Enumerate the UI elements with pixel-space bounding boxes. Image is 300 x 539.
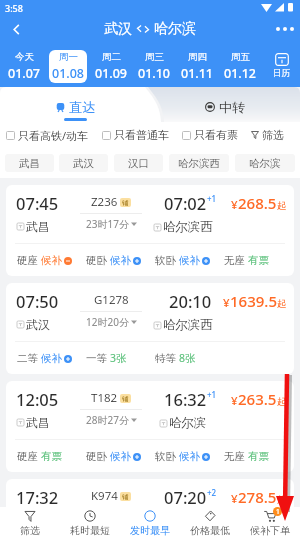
- button[interactable]: 返回: [0, 14, 32, 44]
- staticText: 硬座: [17, 254, 38, 267]
- staticText: 二等: [17, 352, 38, 365]
- staticText: 只看有票: [194, 128, 238, 142]
- staticText: 武昌: [19, 157, 40, 170]
- staticText: 硬卧: [86, 254, 107, 267]
- staticText: 无座: [224, 254, 245, 267]
- button[interactable]: 武汉: [59, 154, 108, 172]
- button[interactable]: 周三: [136, 50, 173, 83]
- staticText: 发时最早: [130, 524, 170, 537]
- staticText: K974: [91, 488, 118, 504]
- staticText: 周三: [145, 51, 164, 63]
- button[interactable]: 周一: [49, 50, 87, 83]
- staticText: 周五: [231, 51, 250, 63]
- button[interactable]: 耗时最短: [60, 507, 120, 539]
- staticText: 01.12: [224, 65, 257, 82]
- button[interactable]: 中转: [150, 87, 300, 122]
- staticText: ¥: [231, 197, 238, 213]
- button[interactable]: 周二: [93, 50, 130, 83]
- button[interactable]: 筛选: [251, 128, 284, 142]
- staticText: Z236: [91, 194, 118, 210]
- staticText: 硬卧: [86, 450, 107, 463]
- staticText: 武汉: [104, 20, 132, 38]
- button[interactable]: 只看高铁/动车: [6, 128, 89, 143]
- staticText: 铺: [122, 199, 129, 207]
- button[interactable]: 直达: [0, 87, 150, 122]
- staticText: 候补: [179, 450, 200, 463]
- staticText: 37时48分: [86, 511, 129, 514]
- staticText: 周二: [102, 51, 121, 63]
- button[interactable]: 只看普通车: [102, 128, 169, 142]
- staticText: 哈尔滨西: [178, 157, 220, 170]
- staticText: 武昌: [26, 513, 50, 514]
- staticText: 特等: [155, 352, 176, 365]
- staticText: 278.5: [238, 487, 277, 507]
- button[interactable]: 1: [240, 507, 300, 539]
- staticText: 哈尔滨西: [163, 219, 213, 235]
- button[interactable]: 07:45: [6, 185, 294, 276]
- staticText: 武汉: [26, 317, 50, 332]
- staticText: 周四: [188, 51, 207, 63]
- staticText: 无座: [224, 450, 245, 463]
- staticText: 1639.5: [230, 291, 277, 311]
- staticText: 3张: [110, 351, 127, 365]
- staticText: 一等: [86, 352, 107, 365]
- staticText: 3:58: [5, 2, 23, 14]
- staticText: 有票: [248, 450, 269, 463]
- staticText: 候补: [110, 450, 131, 463]
- button[interactable]: 武昌: [5, 154, 54, 172]
- staticText: G1278: [94, 292, 129, 308]
- staticText: 武昌: [26, 219, 50, 234]
- button[interactable]: 哈尔滨: [235, 154, 295, 172]
- button[interactable]: 价格最低: [180, 507, 240, 539]
- staticText: 筛选: [20, 524, 40, 537]
- button[interactable]: 日历: [262, 45, 300, 87]
- staticText: ¥: [231, 393, 238, 409]
- staticText: 硬座: [17, 450, 38, 463]
- staticText: 01.10: [138, 65, 171, 82]
- button[interactable]: 汉口: [114, 154, 163, 172]
- staticText: 候补: [41, 254, 62, 267]
- staticText: 直达: [69, 99, 95, 115]
- button[interactable]: 17:32: [6, 479, 294, 514]
- staticText: 软卧: [155, 254, 176, 267]
- staticText: 候补: [41, 352, 62, 365]
- staticText: 263.5: [238, 389, 277, 409]
- staticText: 12:05: [16, 388, 59, 410]
- button[interactable]: 哈尔滨西: [169, 154, 229, 172]
- button[interactable]: 周四: [179, 50, 216, 83]
- button[interactable]: 07:50: [6, 283, 294, 374]
- staticText: 268.5: [238, 193, 277, 213]
- staticText: 有票: [248, 254, 269, 267]
- staticText: 铺: [122, 395, 129, 403]
- staticText: 07:02: [164, 192, 207, 214]
- staticText: 耗时最短: [70, 524, 110, 537]
- staticText: 07:45: [16, 192, 59, 214]
- button[interactable]: 发时最早: [120, 507, 180, 539]
- button[interactable]: 筛选: [0, 507, 60, 539]
- staticText: 起: [277, 200, 287, 212]
- staticText: 日历: [273, 68, 290, 79]
- staticText: 起: [277, 494, 287, 506]
- staticText: 01.07: [8, 65, 41, 82]
- button[interactable]: 周五: [222, 50, 259, 83]
- staticText: 哈尔滨西: [163, 317, 213, 333]
- staticText: 铺: [122, 493, 129, 501]
- staticText: 只看高铁/动车: [18, 128, 89, 143]
- button[interactable]: 更多: [270, 14, 300, 44]
- button[interactable]: 今天: [5, 50, 43, 83]
- staticText: 候补: [179, 254, 200, 267]
- staticText: 筛选: [262, 128, 284, 142]
- staticText: 07:50: [16, 290, 59, 312]
- staticText: 软卧: [155, 450, 176, 463]
- staticText: 汉口: [128, 157, 149, 170]
- staticText: 16:32: [164, 388, 207, 410]
- staticText: 候补: [110, 254, 131, 267]
- button[interactable]: 12:05: [6, 381, 294, 472]
- staticText: 17:32: [16, 486, 59, 508]
- button[interactable]: 只看有票: [182, 128, 238, 142]
- staticText: 哈尔滨: [154, 20, 196, 38]
- staticText: 8张: [179, 351, 196, 365]
- staticText: +2: [207, 487, 217, 498]
- staticText: T182: [91, 390, 118, 406]
